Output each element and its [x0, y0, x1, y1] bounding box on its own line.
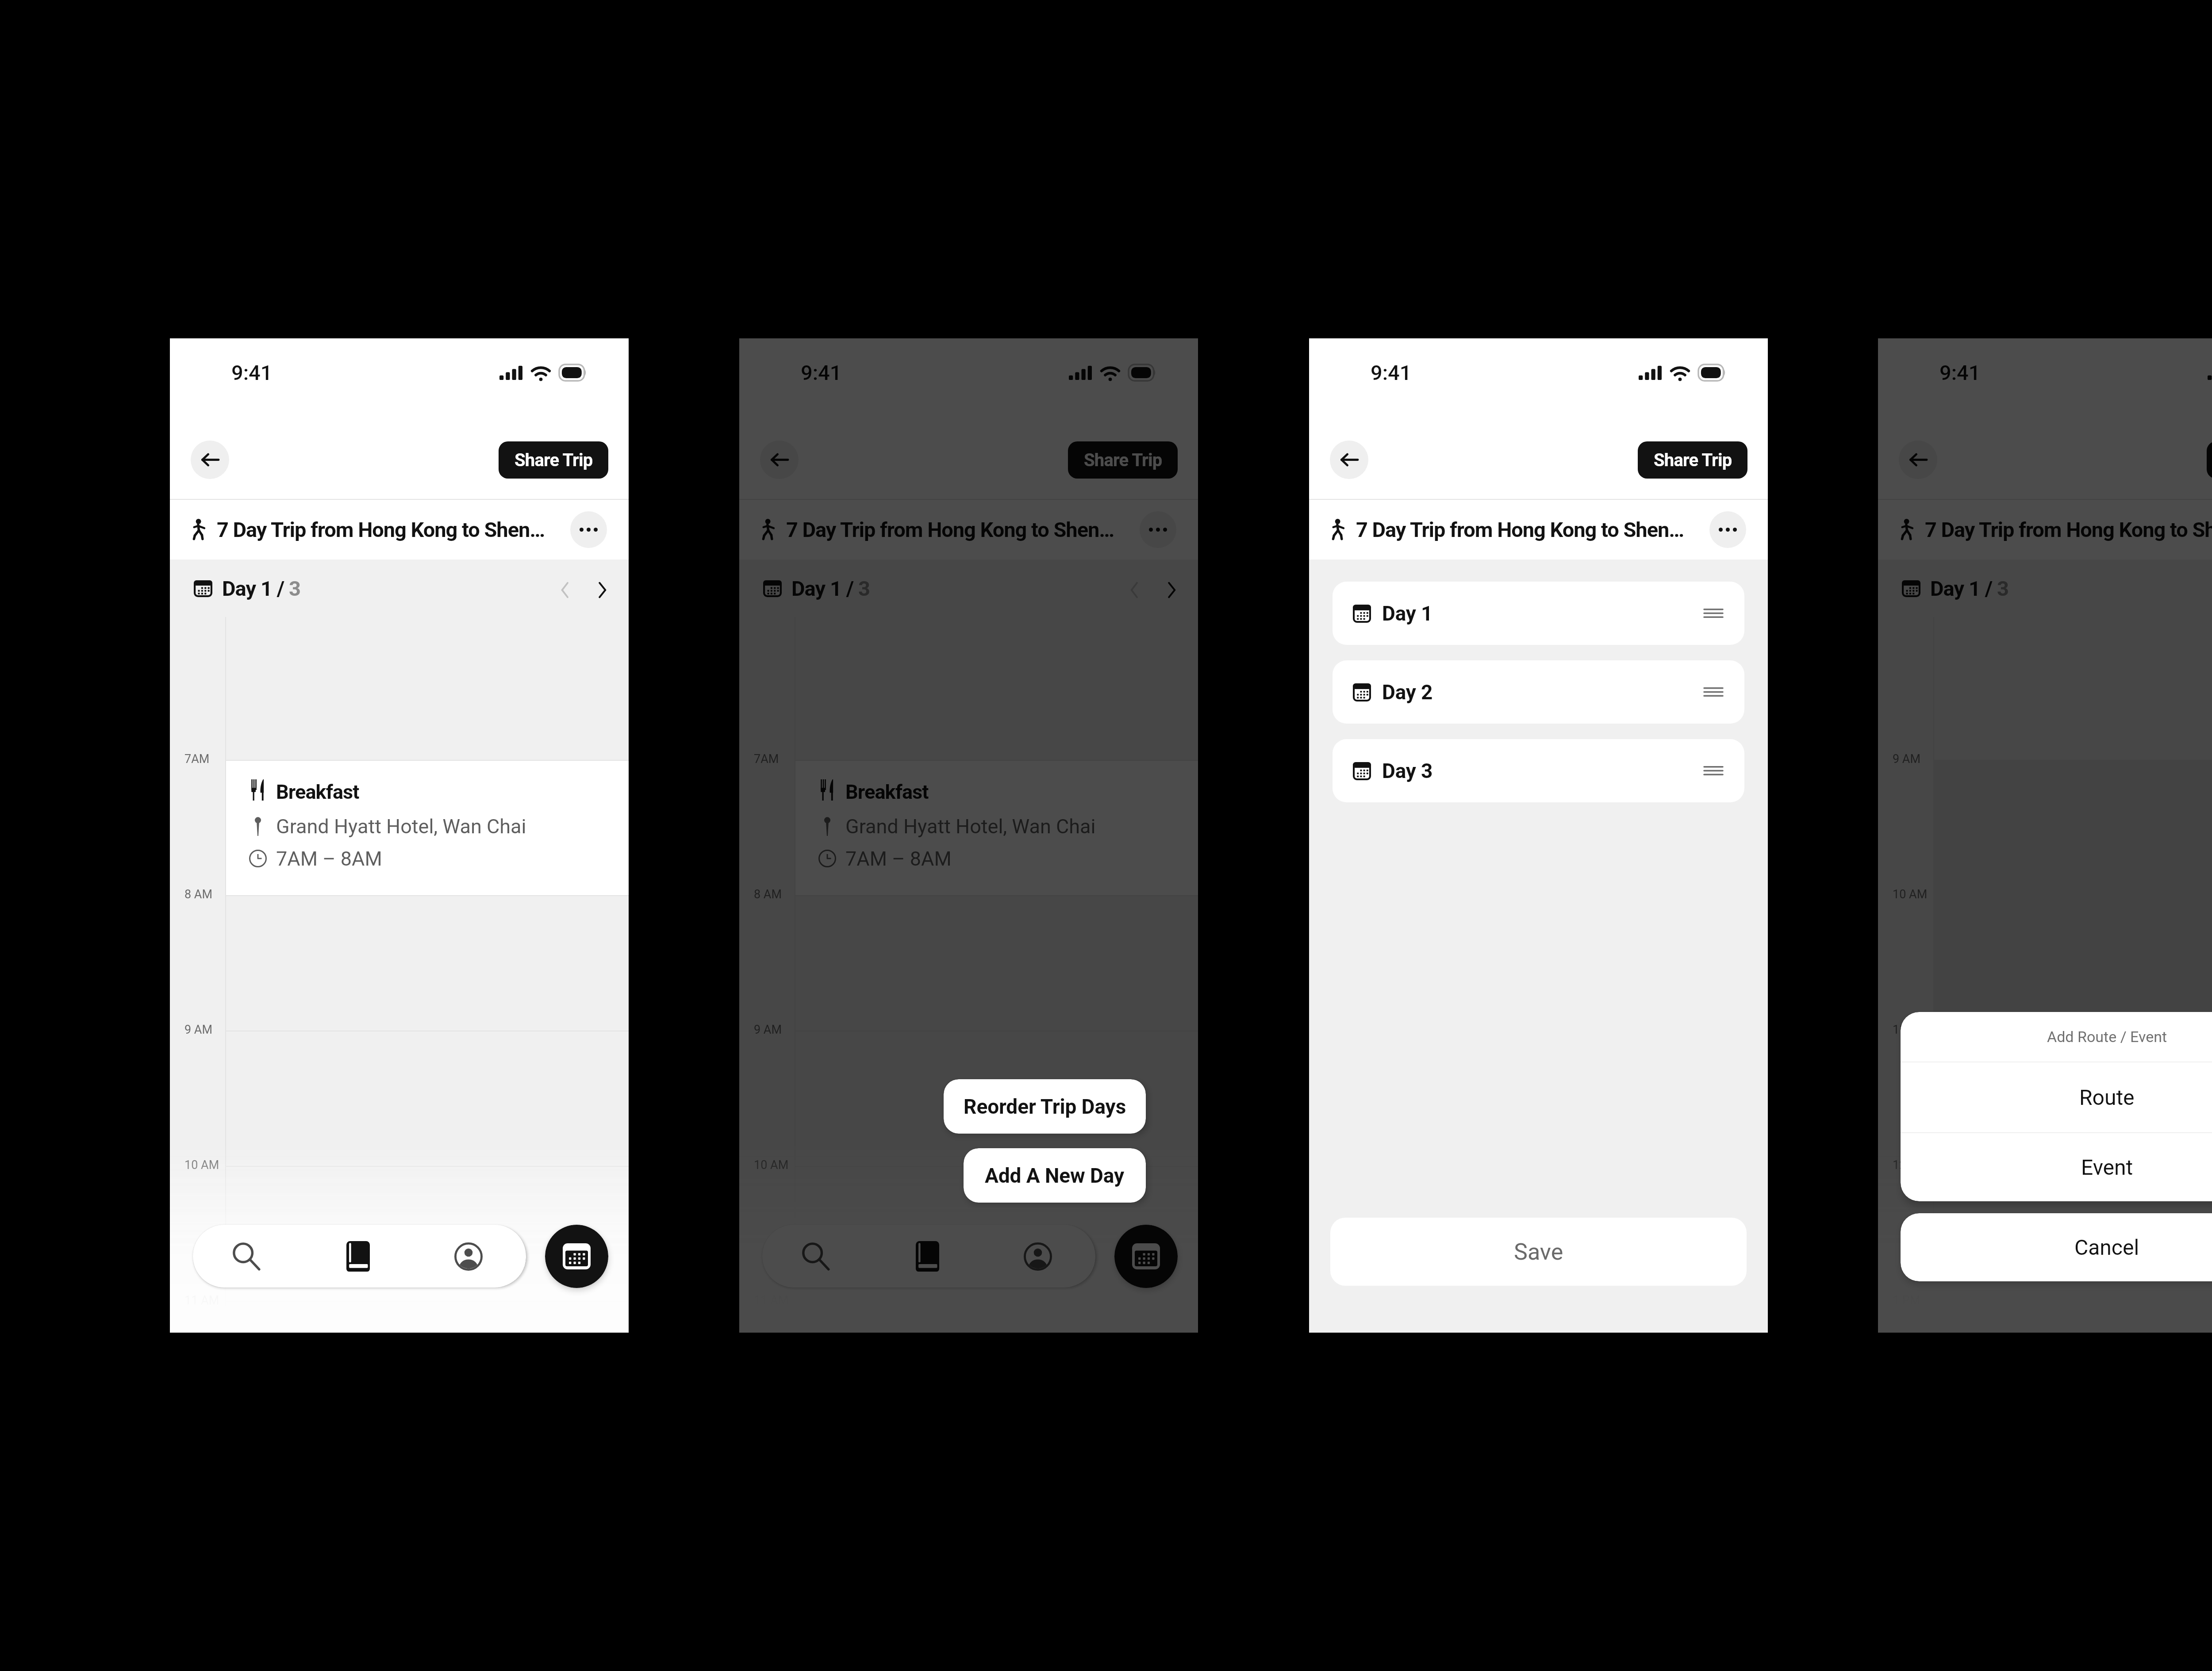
- button[interactable]: Share Trip: [1068, 441, 1178, 479]
- staticText: Save: [1514, 1238, 1563, 1265]
- button[interactable]: Search: [219, 1225, 274, 1288]
- staticText: 7 Day Trip from Hong Kong to Shen…: [1356, 517, 1684, 542]
- button[interactable]: Previous day: [544, 569, 586, 611]
- button[interactable]: Share Trip: [1638, 441, 1747, 479]
- staticText: Reorder Trip Days: [964, 1095, 1126, 1119]
- staticText: Grand Hyatt Hotel, Wan Chai: [276, 815, 526, 838]
- staticText: 9:41: [1371, 360, 1412, 385]
- staticText: Event: [2081, 1155, 2133, 1180]
- button[interactable]: Add A New Day: [964, 1148, 1146, 1203]
- staticText: Add A New Day: [985, 1164, 1125, 1188]
- button[interactable]: Reorder Trip Days: [944, 1079, 1146, 1134]
- button[interactable]: Next day: [581, 569, 623, 611]
- staticText: 7AM: [754, 752, 779, 766]
- staticText: Day 1 /: [1930, 576, 1997, 601]
- staticText: 9 AM: [1893, 752, 1921, 766]
- button[interactable]: Next day: [1151, 569, 1192, 611]
- button[interactable]: Guide: [330, 1225, 386, 1288]
- button[interactable]: Profile: [1010, 1225, 1066, 1288]
- staticText: Day 1 /: [222, 576, 289, 601]
- staticText: Day 2: [1382, 680, 1433, 704]
- button[interactable]: Calendar: [1114, 1225, 1178, 1288]
- staticText: Grand Hyatt Hotel, Wan Chai: [845, 815, 1096, 838]
- staticText: Share Trip: [1084, 450, 1162, 471]
- staticText: Day 1 /: [791, 576, 858, 601]
- button[interactable]: Back: [1330, 441, 1368, 479]
- button[interactable]: Search: [788, 1225, 844, 1288]
- staticText: Share Trip: [515, 450, 593, 471]
- button[interactable]: Back: [1899, 441, 1937, 479]
- button[interactable]: Cancel: [1901, 1213, 2212, 1281]
- button[interactable]: Guide: [899, 1225, 955, 1288]
- staticText: Day 1: [1382, 602, 1433, 625]
- staticText: Route: [2079, 1085, 2135, 1110]
- button[interactable]: Route: [1901, 1062, 2212, 1132]
- button[interactable]: Day 1: [1333, 582, 1744, 645]
- button[interactable]: Back: [760, 441, 799, 479]
- staticText: Breakfast: [845, 780, 929, 804]
- button[interactable]: More options: [1709, 511, 1746, 548]
- staticText: 10 AM: [754, 1158, 789, 1172]
- button[interactable]: Calendar: [545, 1225, 608, 1288]
- button[interactable]: More options: [1140, 511, 1176, 548]
- staticText: 7 Day Trip from Hong Kong to Shen…: [786, 517, 1114, 542]
- button[interactable]: More options: [570, 511, 607, 548]
- staticText: 7AM – 8AM: [276, 847, 382, 870]
- staticText: 3: [1997, 576, 2009, 601]
- staticText: 8 AM: [184, 887, 213, 901]
- button[interactable]: Event: [1901, 1133, 2212, 1201]
- staticText: 7 Day Trip from Hong Kong to Shen…: [217, 517, 545, 542]
- staticText: 9:41: [231, 360, 273, 385]
- staticText: Breakfast: [276, 780, 359, 804]
- button[interactable]: Breakfast: [795, 761, 1198, 895]
- button[interactable]: Day 2: [1333, 660, 1744, 724]
- staticText: Add Route / Event: [2047, 1028, 2167, 1046]
- button[interactable]: Day 3: [1333, 739, 1744, 802]
- staticText: 9 AM: [184, 1023, 213, 1037]
- staticText: 9 AM: [754, 1023, 782, 1037]
- button[interactable]: Back: [191, 441, 229, 479]
- staticText: 11 AM: [1893, 1023, 1928, 1037]
- staticText: 9:41: [1939, 360, 1981, 385]
- button[interactable]: Breakfast: [226, 761, 629, 895]
- staticText: 8 AM: [754, 887, 782, 901]
- staticText: Day 3: [1382, 759, 1433, 783]
- staticText: Share Trip: [1654, 450, 1732, 471]
- button[interactable]: Save: [1330, 1218, 1747, 1286]
- staticText: 9:41: [801, 360, 842, 385]
- button[interactable]: Profile: [441, 1225, 496, 1288]
- staticText: 12 PM: [1893, 1158, 1927, 1172]
- staticText: 7 Day Trip from Hong Kong to Shen…: [1925, 517, 2212, 542]
- staticText: 3: [289, 576, 301, 601]
- button[interactable]: Share Trip: [2207, 441, 2212, 479]
- button[interactable]: Share Trip: [499, 441, 608, 479]
- staticText: 7AM: [184, 752, 210, 766]
- staticText: 7AM – 8AM: [845, 847, 952, 870]
- staticText: Cancel: [2074, 1235, 2139, 1260]
- staticText: 10 AM: [184, 1158, 219, 1172]
- staticText: 3: [858, 576, 870, 601]
- staticText: 10 AM: [1893, 887, 1928, 901]
